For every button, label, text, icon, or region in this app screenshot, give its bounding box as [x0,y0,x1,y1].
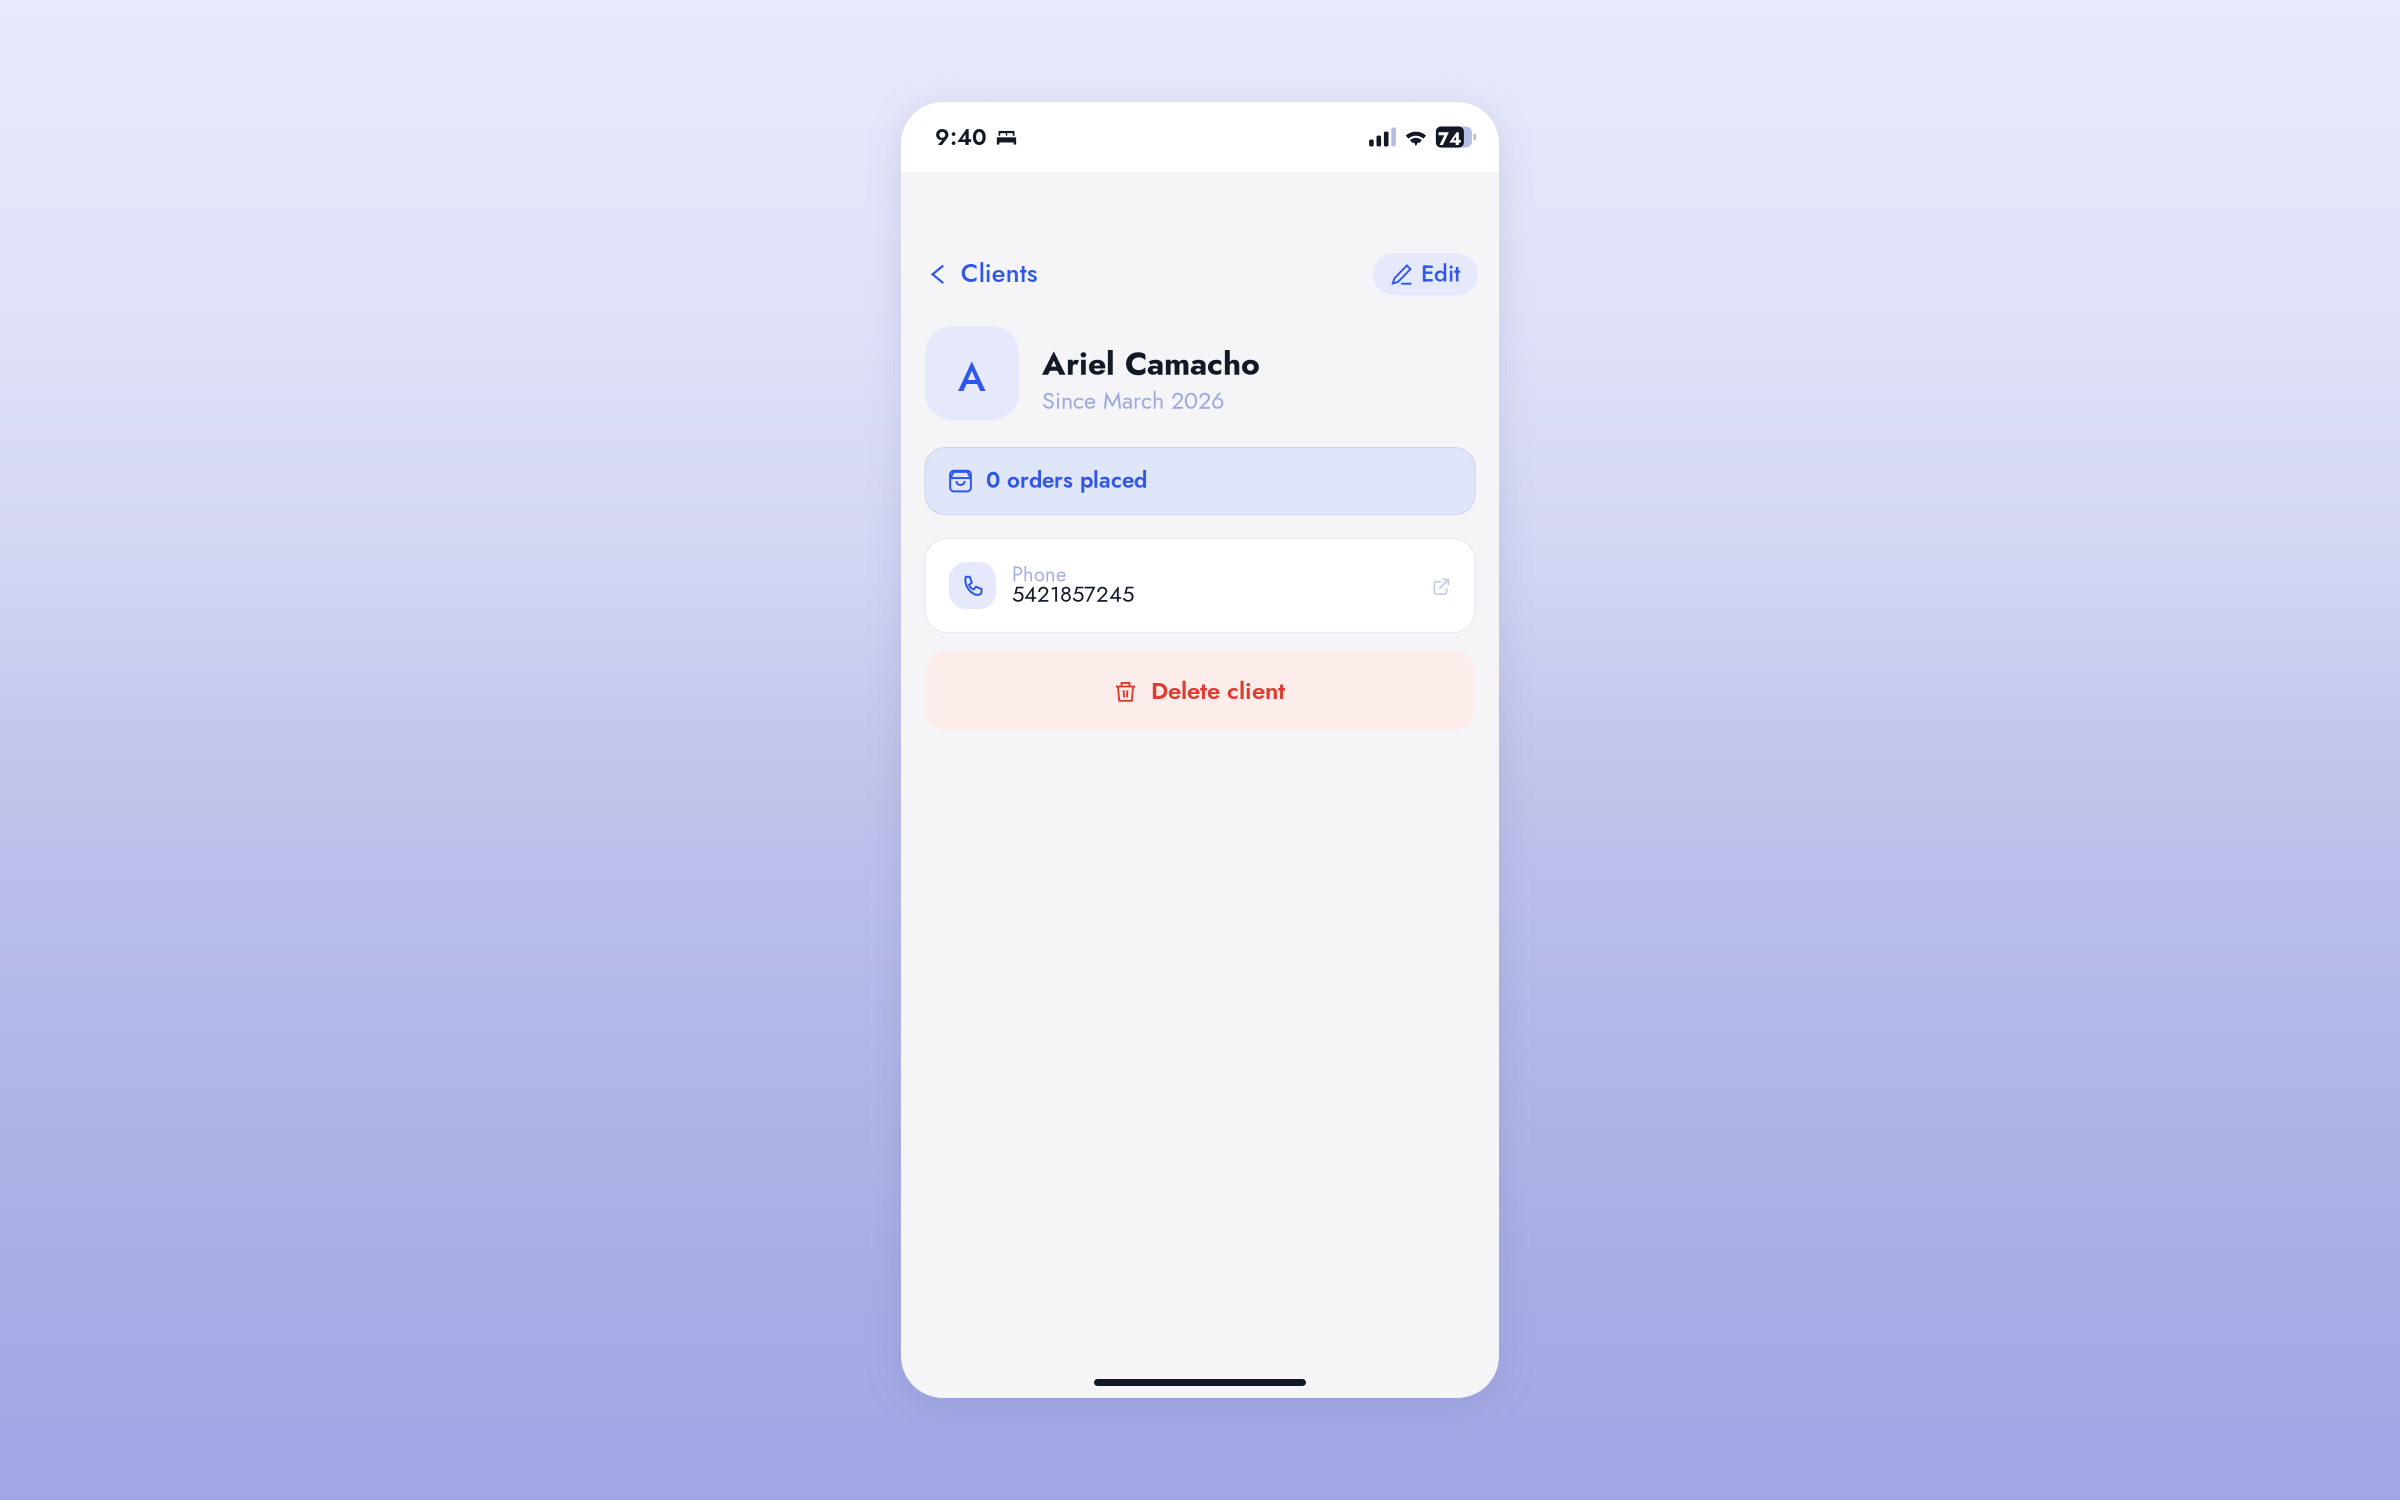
button[interactable]: Phone [925,539,1475,633]
staticText: 5421857245 [1012,578,1134,610]
staticText: Phone [1012,560,1066,589]
staticText: Ariel Camacho [1042,341,1260,387]
button[interactable]: Edit [1373,253,1478,295]
staticText: Since March 2026 [1042,384,1224,417]
staticText: Clients [961,255,1038,292]
button[interactable]: Clients [925,248,1038,301]
staticText: 74 [1438,126,1462,152]
staticText: 0 orders placed [986,464,1147,496]
staticText: A [958,348,986,406]
button[interactable]: 0 orders placed [925,448,1475,515]
button[interactable]: Delete client [925,652,1475,730]
staticText: 9:40 [935,121,987,153]
staticText: Edit [1421,256,1460,290]
staticText: Delete client [1151,673,1285,708]
